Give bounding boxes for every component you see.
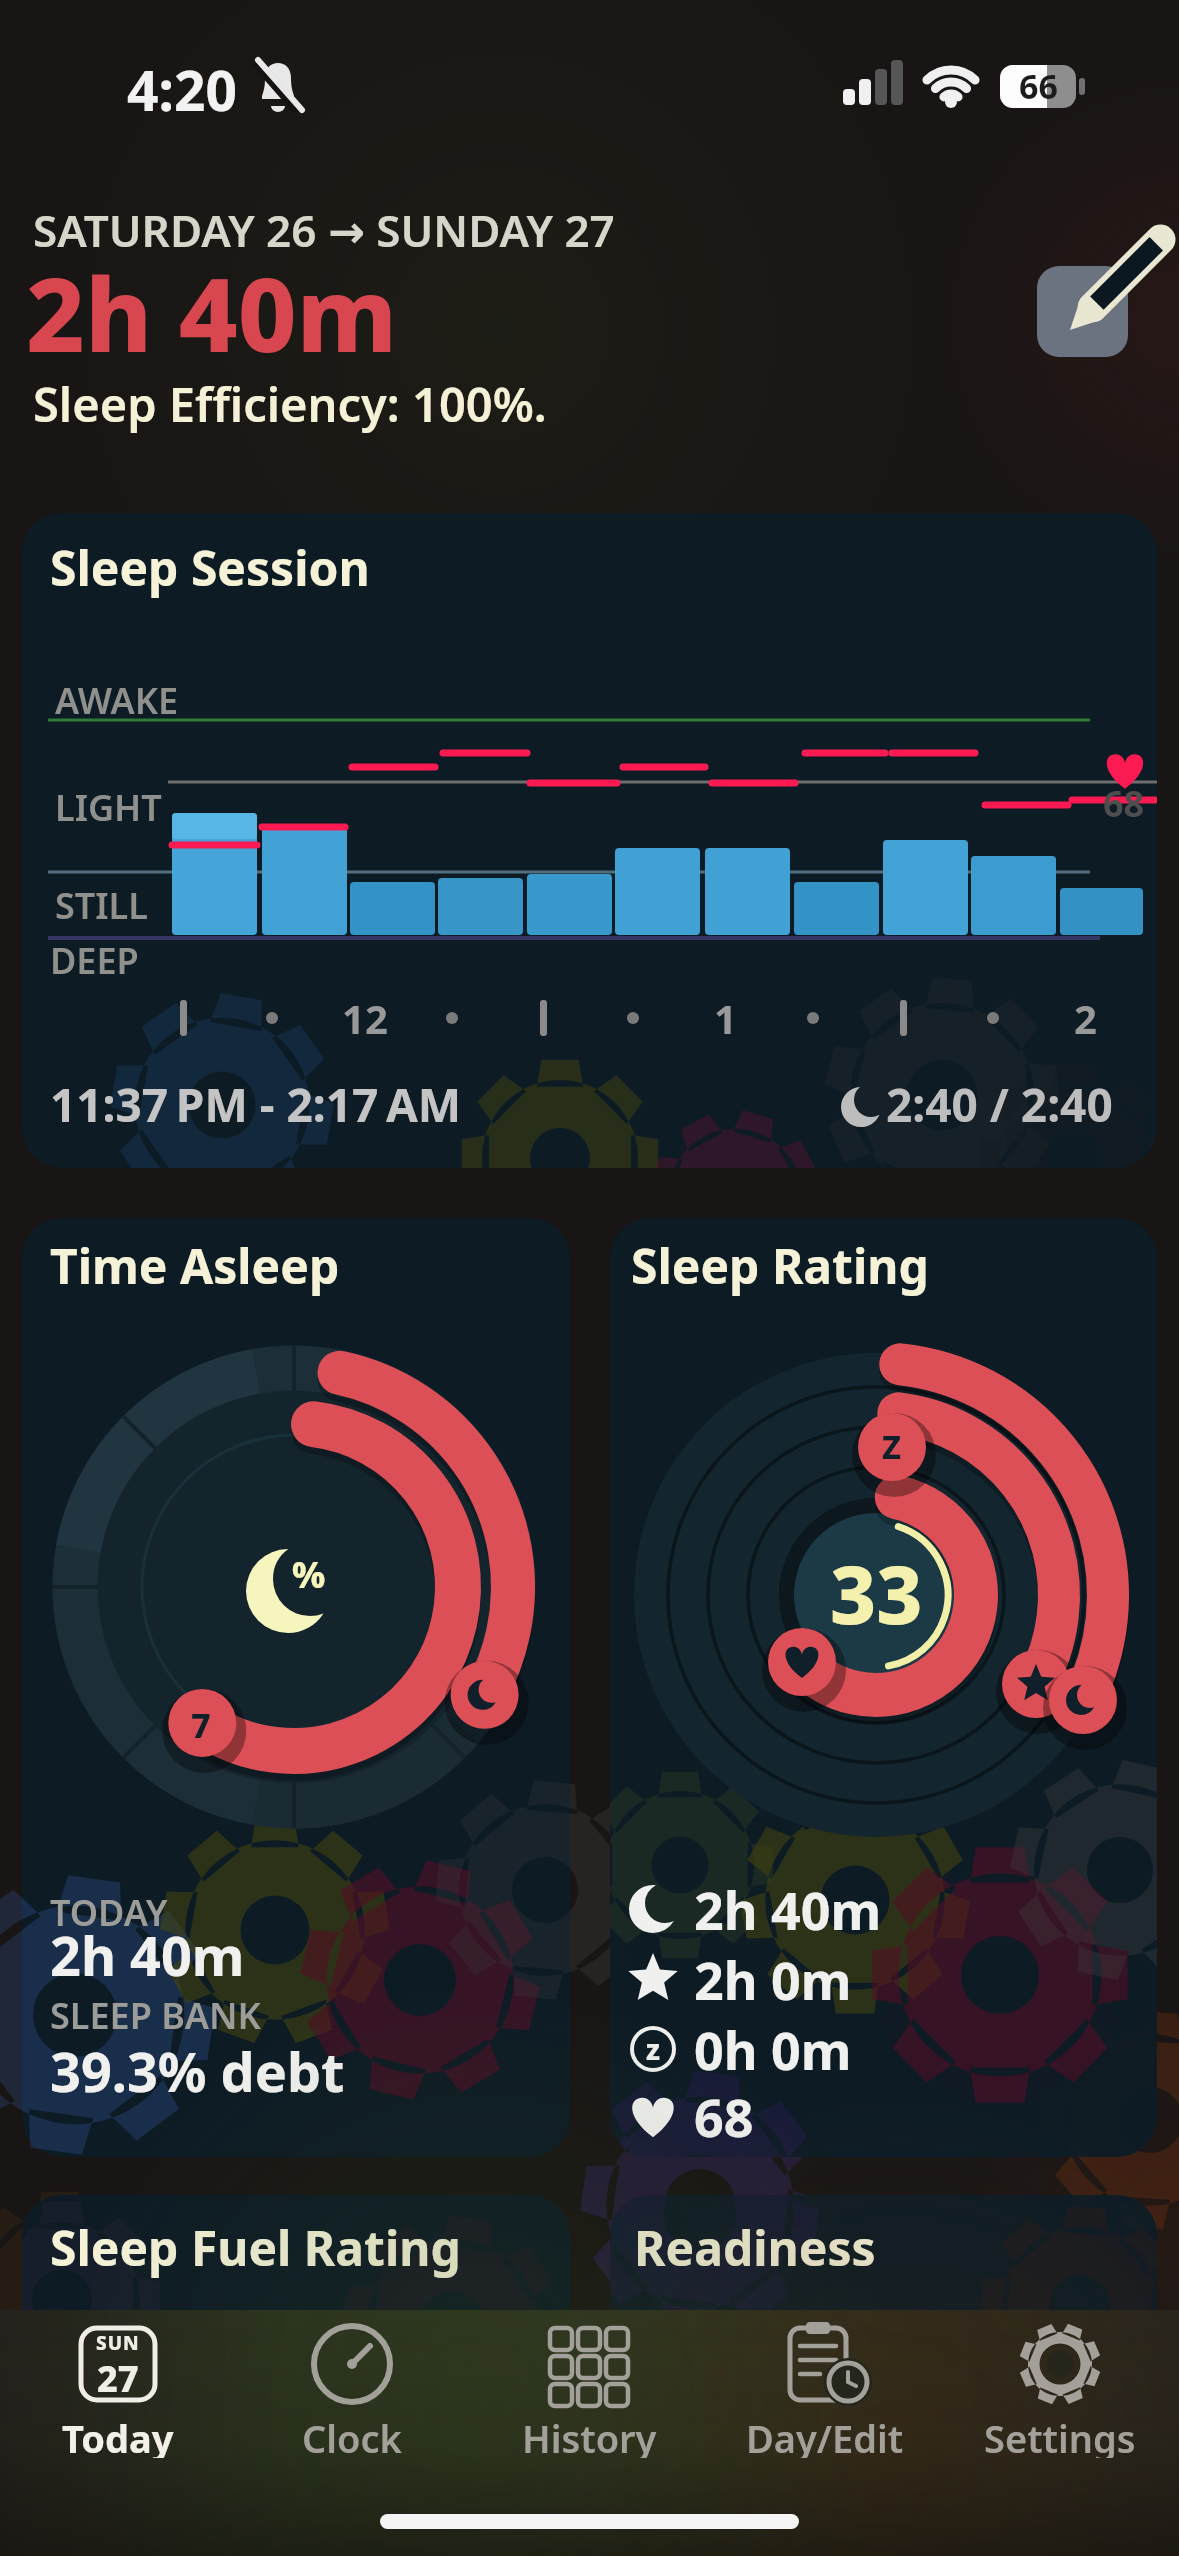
staticText: DEEP [50,936,139,985]
button[interactable] [1037,266,1128,357]
staticText: 2:40 / 2:40 [886,1073,1113,1136]
button[interactable]: Settings [965,2318,1155,2458]
staticText: Clock [302,2412,402,2458]
staticText: History [522,2412,657,2458]
staticText: Z [882,1425,902,1469]
staticText: SLEEP BANK [50,1991,261,2040]
staticText: Time Asleep [50,1233,340,1298]
staticText: 66 [1019,63,1058,109]
staticText: Settings [984,2412,1136,2458]
staticText: LIGHT [55,783,162,832]
staticText: 0h 0m [694,2014,852,2085]
staticText: 33 [830,1538,923,1647]
staticText: Day/Edit [746,2412,904,2458]
staticText: 2 [1074,991,1097,1045]
button[interactable]: Day/Edit [730,2318,920,2458]
staticText: 2h 0m [694,1944,852,2015]
button[interactable]: History [494,2318,684,2458]
staticText: Sleep Efficiency: 100%. [33,372,547,436]
staticText: TODAY [50,1888,168,1937]
staticText: SATURDAY 26 → SUNDAY 27 [33,200,615,260]
staticText: AWAKE [55,676,179,725]
staticText: 68 [694,2081,754,2152]
staticText: STILL [55,881,148,930]
button[interactable]: Clock [257,2318,447,2458]
staticText: 68 [1103,779,1145,828]
staticText: Sleep Fuel Rating [50,2215,461,2280]
staticText: 12 [342,991,388,1045]
button[interactable]: Readiness [610,2195,1157,2556]
button[interactable]: SUN [23,2318,213,2458]
staticText: SUN [96,2330,140,2356]
staticText: Today [62,2412,174,2458]
button[interactable]: Sleep Fuel Rating [22,2195,570,2556]
staticText: 27 [97,2354,139,2396]
staticText: Sleep Session [50,535,370,600]
staticText: Sleep Rating [631,1233,929,1298]
staticText: 39.3% debt [50,2034,345,2108]
button[interactable]: Z [610,1218,1157,2157]
staticText: 1 [714,991,737,1045]
staticText: 2h 40m [50,1918,245,1992]
staticText: 4:20 [127,52,237,127]
button[interactable]: Sleep Session [22,513,1157,1168]
staticText: 7 [191,1702,211,1748]
staticText: Readiness [634,2215,876,2280]
staticText: 2h 40m [26,243,398,382]
staticText: z [646,2030,660,2068]
button[interactable]: 7 [22,1218,570,2157]
staticText: 2h 40m [694,1874,882,1945]
staticText: 11:37 PM - 2:17 AM [50,1073,462,1136]
staticText: % [292,1550,326,1599]
